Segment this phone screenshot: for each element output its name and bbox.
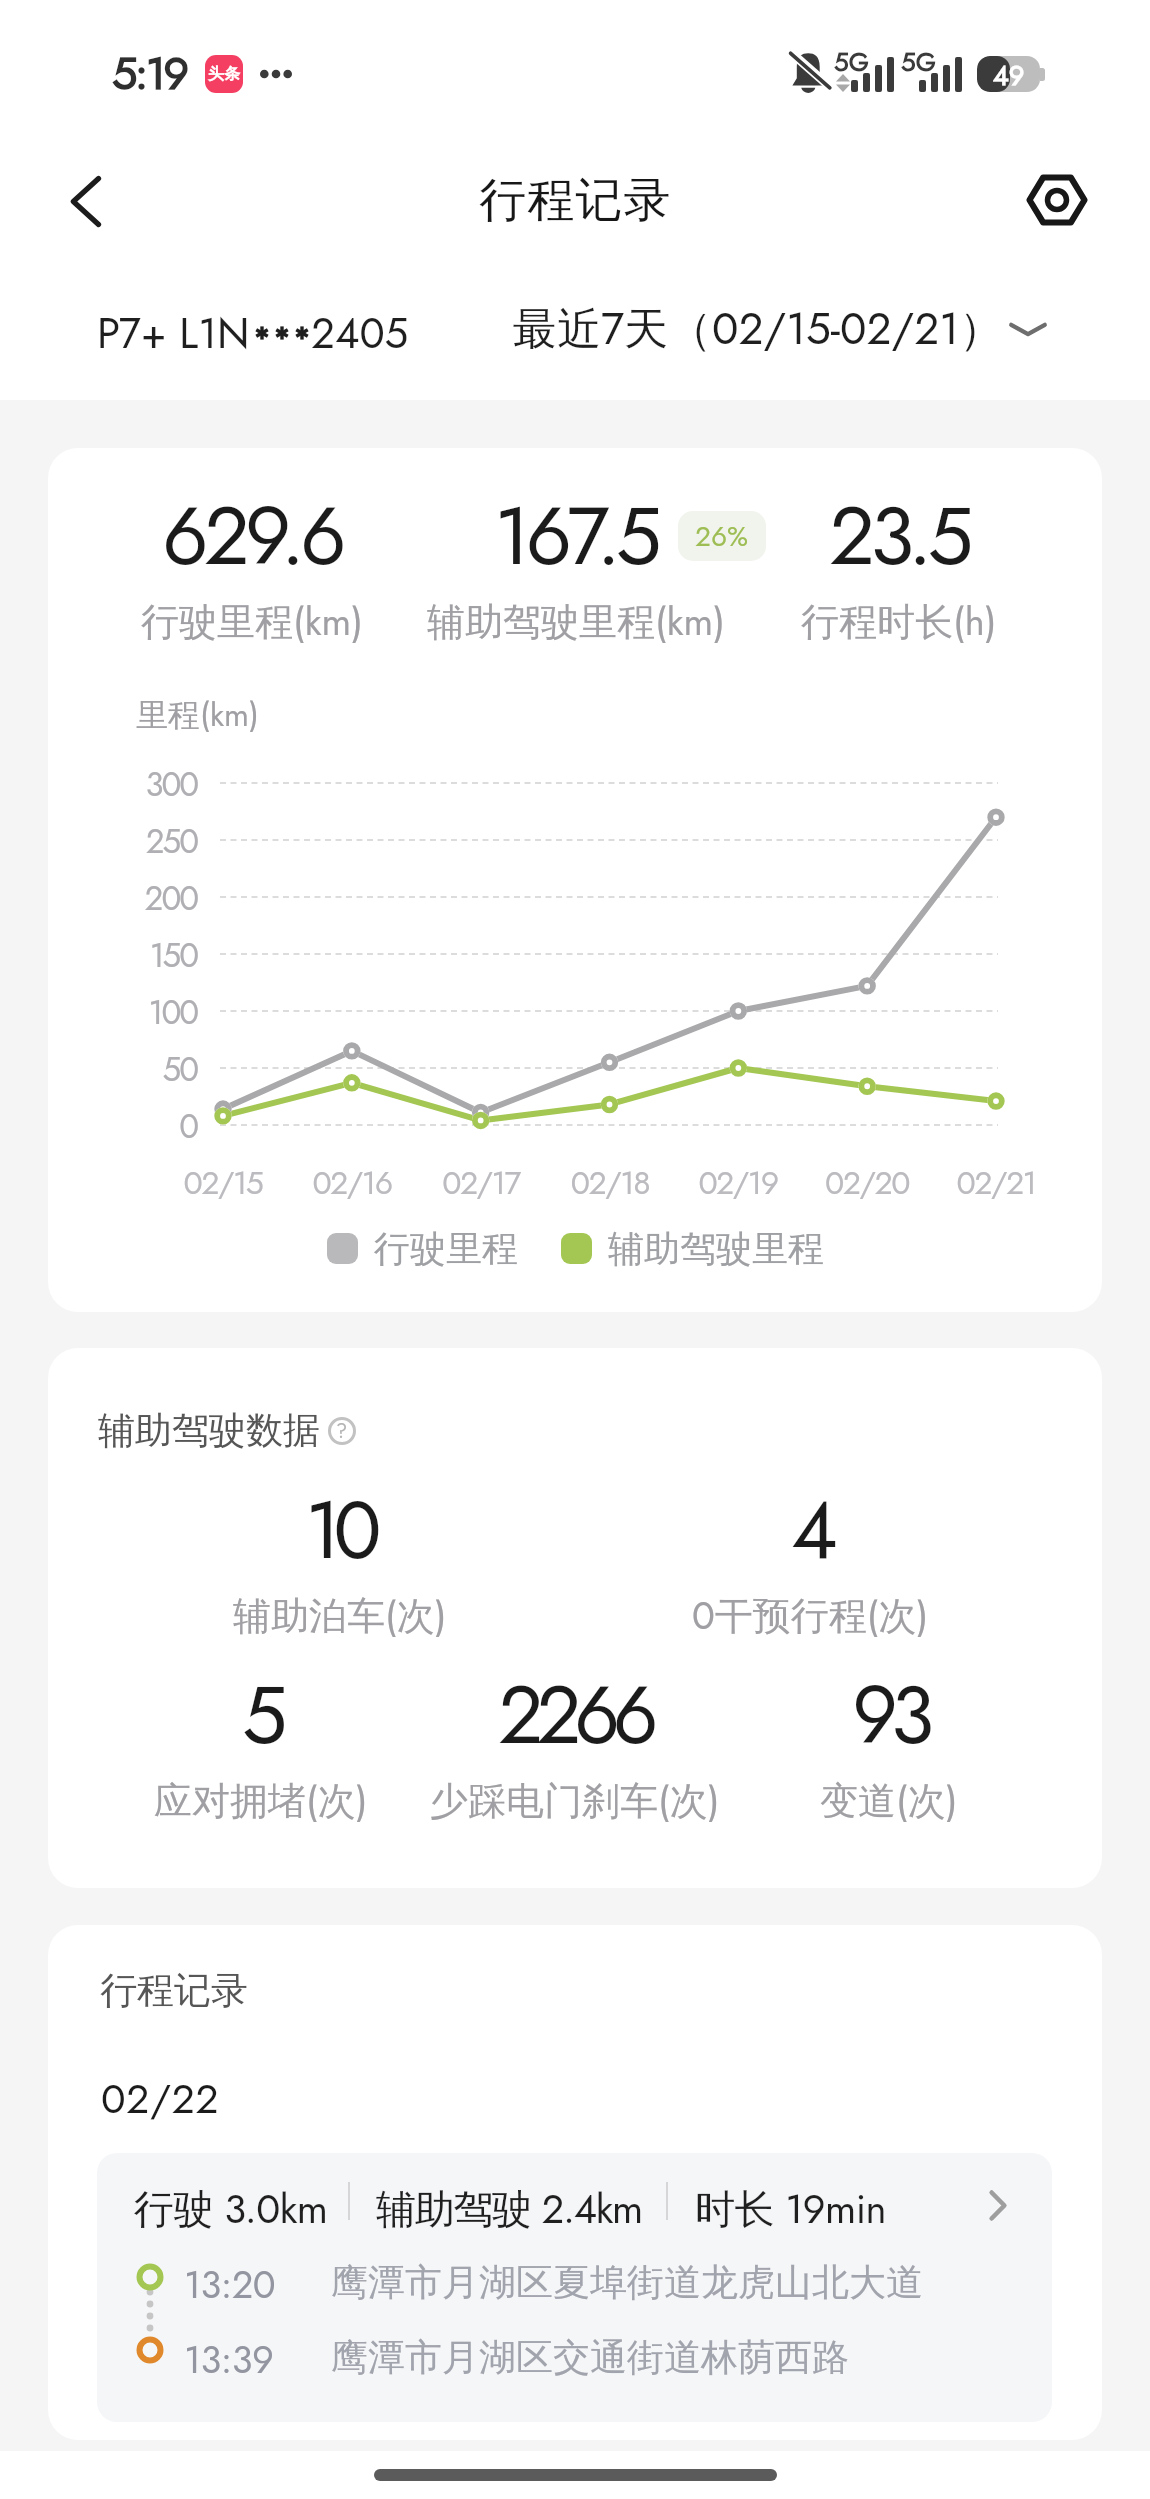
staticText: 行驶里程 bbox=[374, 1226, 518, 1271]
staticText: 13:39 bbox=[184, 2332, 274, 2387]
staticText: 100 bbox=[48, 989, 197, 1037]
button[interactable]: 最近7天（02/15-02/21） bbox=[513, 297, 1049, 361]
staticText: 10 bbox=[305, 1472, 374, 1588]
button[interactable]: 行驶 3.0km bbox=[97, 2153, 1052, 2422]
staticText: 鹰潭市月湖区交通街道林荫西路 bbox=[331, 2334, 849, 2381]
staticText: 辅助泊车(次) bbox=[233, 1588, 447, 1643]
staticText: 辅助驾驶 2.4km bbox=[376, 2180, 642, 2238]
staticText: 02/16 bbox=[272, 1160, 432, 1206]
staticText: 0 bbox=[48, 1103, 197, 1151]
staticText: 0干预行程(次) bbox=[692, 1588, 929, 1643]
staticText: 变道(次) bbox=[820, 1773, 958, 1828]
staticText: 02/20 bbox=[787, 1160, 947, 1206]
staticText: 02/19 bbox=[658, 1160, 818, 1206]
button[interactable]: Back bbox=[44, 160, 126, 242]
staticText: 150 bbox=[48, 932, 197, 980]
staticText: 167.5 bbox=[494, 477, 657, 594]
staticText: 头条 bbox=[208, 64, 240, 84]
staticText: 93 bbox=[852, 1657, 927, 1773]
staticText: 02/17 bbox=[401, 1160, 561, 1206]
staticText: 4 bbox=[791, 1472, 831, 1588]
staticText: 时长 19min bbox=[695, 2180, 886, 2238]
staticText: 250 bbox=[48, 818, 197, 866]
staticText: 5G bbox=[901, 43, 936, 81]
staticText: 最近7天（02/15-02/21） bbox=[513, 297, 1003, 361]
staticText: 50 bbox=[48, 1046, 197, 1094]
staticText: 5:19 bbox=[112, 41, 187, 106]
staticText: 300 bbox=[48, 761, 197, 809]
staticText: 行驶里程(km) bbox=[141, 594, 363, 649]
staticText: 26% bbox=[695, 516, 749, 556]
staticText: 辅助驾驶数据 bbox=[98, 1407, 320, 1454]
staticText: 5 bbox=[242, 1657, 280, 1773]
staticText: 行程记录 bbox=[100, 1967, 248, 2014]
staticText: 200 bbox=[48, 875, 197, 923]
staticText: 02/21 bbox=[916, 1160, 1076, 1206]
staticText: 鹰潭市月湖区夏埠街道龙虎山北大道 bbox=[331, 2259, 923, 2306]
staticText: 629.6 bbox=[162, 477, 342, 594]
staticText: 行程记录 bbox=[479, 171, 671, 230]
staticText: 13:20 bbox=[184, 2257, 276, 2312]
button[interactable]: Settings bbox=[1016, 159, 1098, 241]
button[interactable]: Help about assisted driving data bbox=[328, 1417, 356, 1445]
staticText: 02/18 bbox=[530, 1160, 690, 1206]
staticText: ? bbox=[336, 1417, 348, 1445]
staticText: 02/15 bbox=[143, 1160, 303, 1206]
staticText: 应对拥堵(次) bbox=[154, 1773, 368, 1828]
staticText: 49 bbox=[993, 56, 1025, 92]
staticText: 5G bbox=[834, 43, 869, 81]
staticText: 23.5 bbox=[829, 477, 969, 594]
staticText: 少踩电门刹车(次) bbox=[430, 1773, 720, 1828]
staticText: 行程时长(h) bbox=[801, 594, 997, 649]
staticText: 行驶 3.0km bbox=[134, 2180, 328, 2238]
staticText: 2266 bbox=[498, 1657, 652, 1773]
staticText: 2405 bbox=[311, 303, 409, 364]
staticText: 辅助驾驶里程 bbox=[608, 1226, 824, 1271]
staticText: 辅助驾驶里程(km) bbox=[427, 594, 725, 649]
staticText: 02/22 bbox=[101, 2069, 220, 2128]
staticText: 里程(km) bbox=[136, 692, 259, 738]
staticText: P7+ L1N bbox=[97, 303, 250, 364]
